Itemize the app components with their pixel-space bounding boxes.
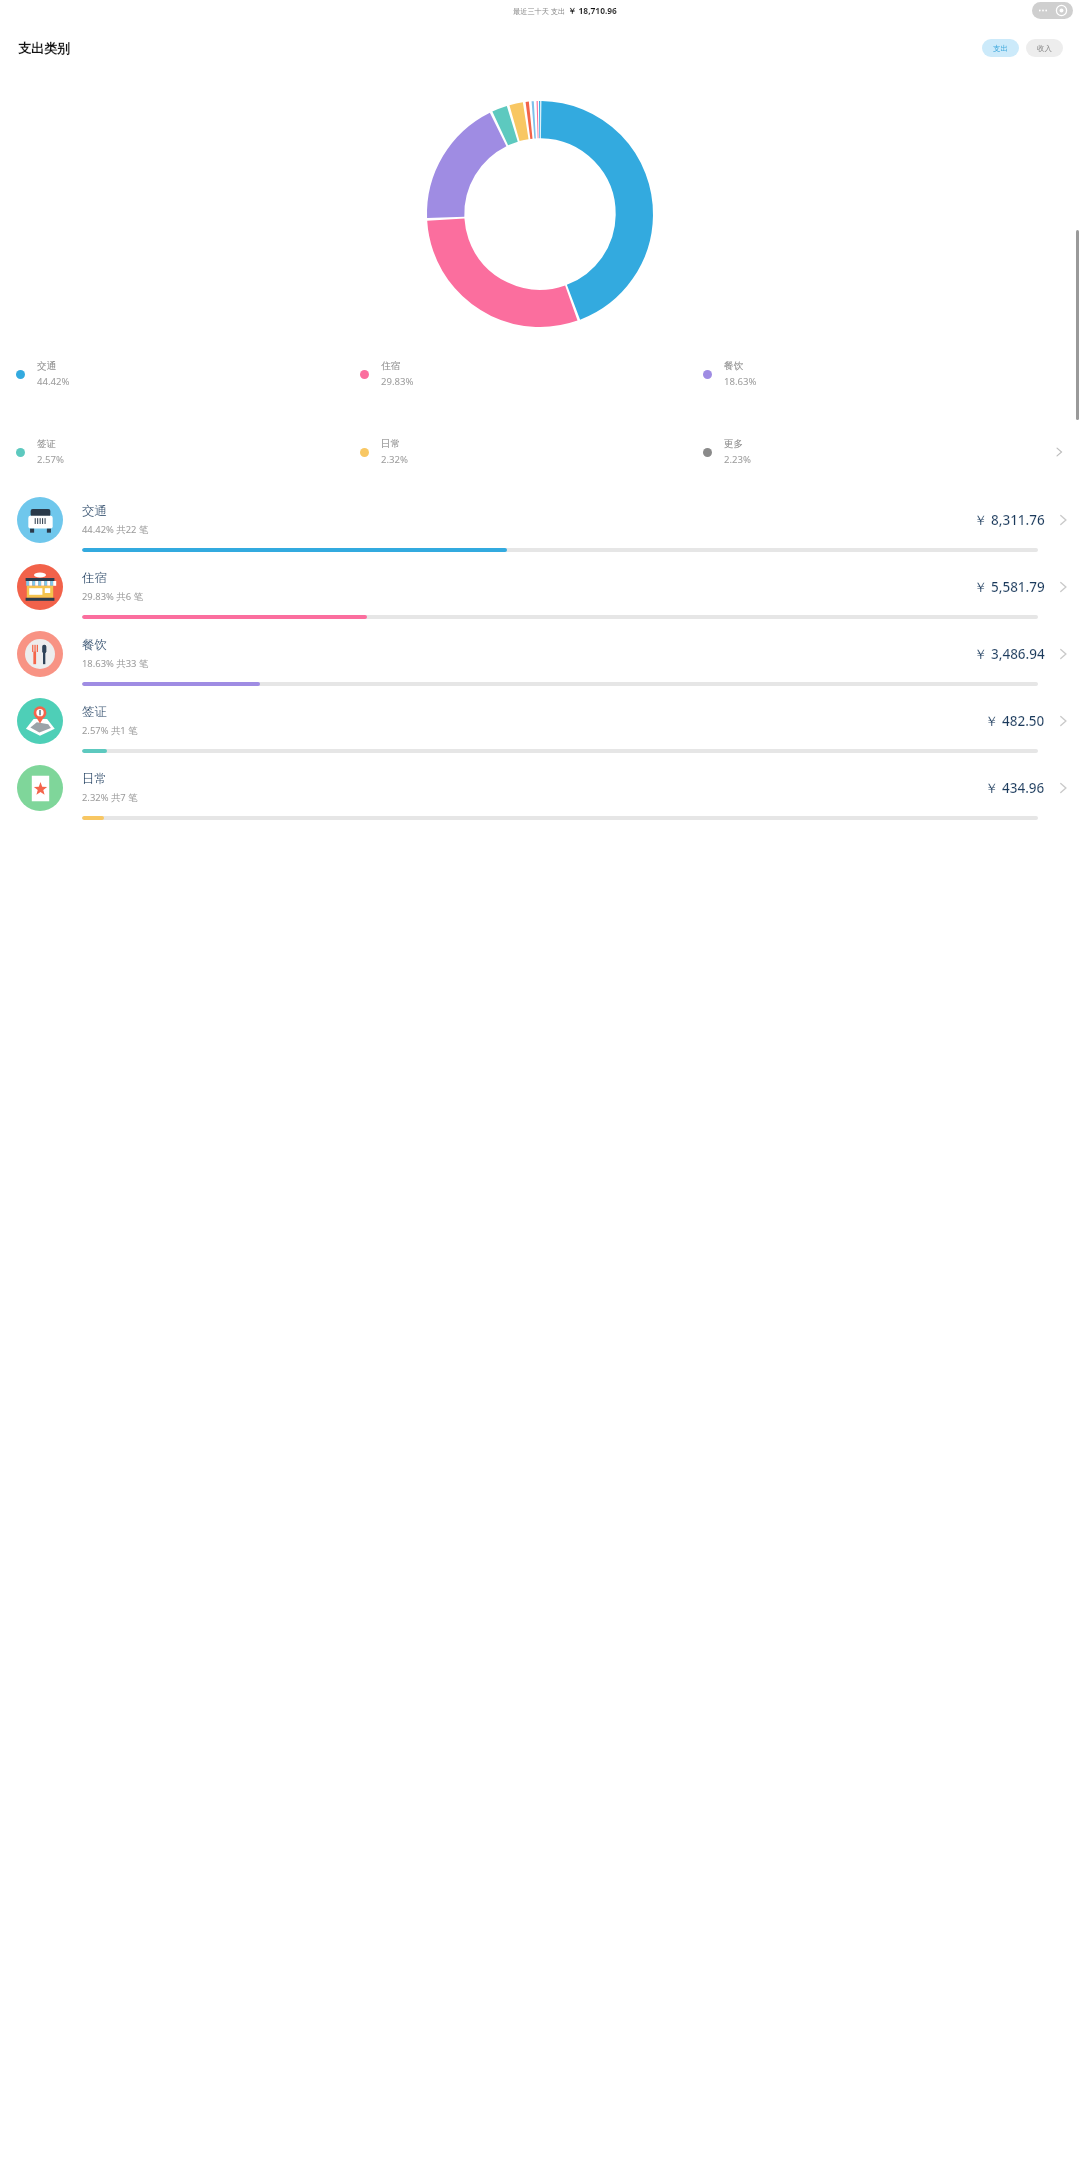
staticText: 18.63% — [724, 375, 757, 388]
staticText: ￥ 18,710.96 — [568, 5, 617, 16]
staticText: 更多 — [724, 438, 744, 450]
staticText: 2.32% 共7 笔 — [82, 791, 138, 804]
staticText: ￥ 5,581.79 — [974, 578, 1045, 596]
staticText: 44.42% — [37, 375, 70, 388]
button[interactable]: 收入 — [1026, 39, 1063, 57]
staticText: 支出类别 — [18, 40, 70, 56]
staticText: 44.42% 共22 笔 — [82, 523, 149, 536]
staticText: 最近三十天 支出 — [513, 6, 568, 16]
button[interactable]: 支出 — [982, 39, 1019, 57]
staticText: 住宿 — [82, 570, 107, 586]
staticText: 2.23% — [724, 453, 752, 466]
button[interactable]: 更多 — [703, 427, 1046, 477]
staticText: 收入 — [1037, 44, 1052, 53]
button[interactable]: 签证 — [0, 692, 1080, 759]
button[interactable]: 餐饮 — [703, 349, 1046, 399]
button[interactable]: 住宿 — [360, 349, 703, 399]
staticText: 餐饮 — [724, 360, 744, 372]
staticText: 29.83% — [381, 375, 414, 388]
staticText: 住宿 — [381, 360, 401, 372]
button[interactable]: 餐饮 — [0, 625, 1080, 692]
staticText: 签证 — [82, 704, 107, 720]
button[interactable]: 交通 — [0, 491, 1080, 558]
staticText: ￥ 434.96 — [985, 779, 1045, 797]
button[interactable]: 住宿 — [0, 558, 1080, 625]
staticText: 餐饮 — [82, 637, 107, 653]
staticText: 签证 — [37, 438, 57, 450]
staticText: 日常 — [82, 771, 107, 787]
staticText: ￥ 8,311.76 — [974, 511, 1045, 529]
button[interactable]: 日常 — [0, 759, 1080, 826]
staticText: 交通 — [37, 360, 57, 372]
button[interactable]: 交通 — [16, 349, 360, 399]
staticText: 2.32% — [381, 453, 409, 466]
staticText: 交通 — [82, 503, 107, 519]
button[interactable]: More options — [1032, 2, 1073, 19]
staticText: ￥ 482.50 — [985, 712, 1045, 730]
staticText: 支出 — [993, 44, 1008, 53]
staticText: 18.63% 共33 笔 — [82, 657, 149, 670]
button[interactable]: More categories — [1046, 427, 1072, 477]
staticText: 2.57% — [37, 453, 65, 466]
staticText: 2.57% 共1 笔 — [82, 724, 138, 737]
staticText: 29.83% 共6 笔 — [82, 590, 143, 603]
staticText: ￥ 3,486.94 — [974, 645, 1045, 663]
staticText: 日常 — [381, 438, 401, 450]
button[interactable]: 日常 — [360, 427, 703, 477]
button[interactable]: 签证 — [16, 427, 360, 477]
